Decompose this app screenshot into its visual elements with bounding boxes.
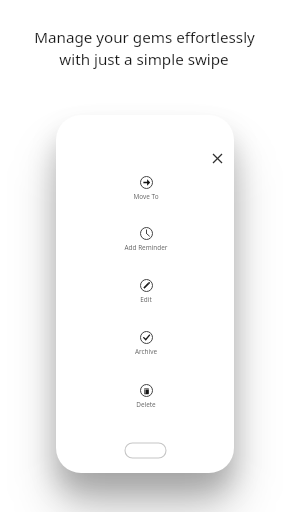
staticText: Add Reminder: [111, 243, 181, 252]
staticText: Manage your gems effortlessly: [34, 27, 255, 48]
button[interactable]: Move To: [111, 176, 181, 201]
button[interactable]: Delete: [111, 384, 181, 409]
staticText: Archive: [111, 347, 181, 356]
button[interactable]: Close: [205, 146, 229, 170]
button[interactable]: Add Reminder: [111, 227, 181, 252]
staticText: Delete: [111, 400, 181, 409]
staticText: with just a simple swipe: [59, 49, 229, 70]
staticText: Edit: [111, 295, 181, 304]
staticText: Move To: [111, 192, 181, 201]
button[interactable]: Archive: [111, 331, 181, 356]
button[interactable]: Edit: [111, 279, 181, 304]
